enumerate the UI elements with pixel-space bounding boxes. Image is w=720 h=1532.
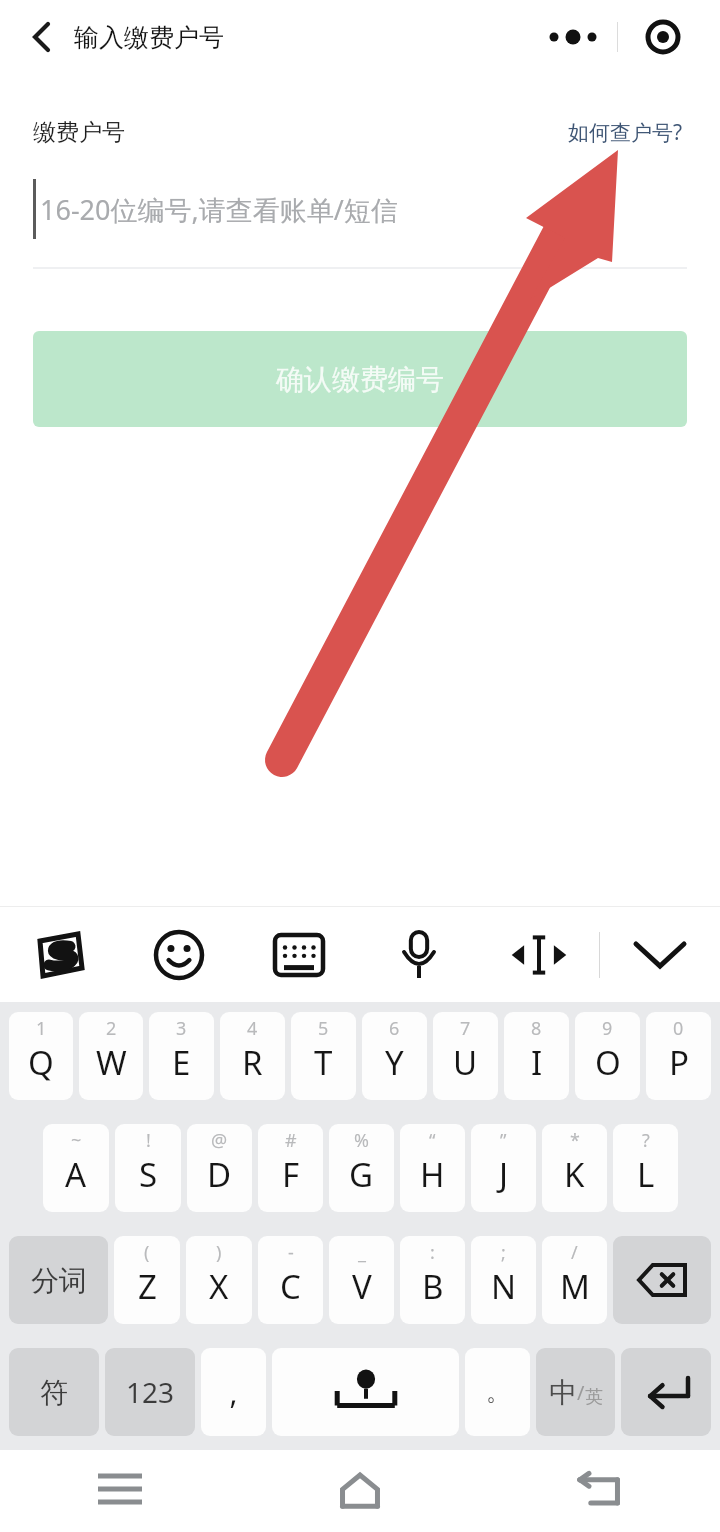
staticText: 英 <box>585 1386 603 1409</box>
staticText: U <box>453 1040 478 1085</box>
staticText: J <box>499 1152 509 1197</box>
button[interactable]: % <box>329 1124 394 1212</box>
staticText: 输入缴费户号 <box>74 22 224 53</box>
staticText: % <box>354 1128 369 1153</box>
staticText: V <box>352 1264 372 1309</box>
button[interactable]: Keyboard layout <box>239 907 359 1002</box>
staticText: ” <box>500 1128 507 1153</box>
staticText: I <box>531 1040 543 1085</box>
staticText: * <box>570 1128 580 1153</box>
button[interactable]: 0 <box>646 1012 711 1100</box>
button[interactable]: ~ <box>43 1124 109 1212</box>
staticText: ) <box>216 1240 222 1265</box>
staticText: 1 <box>36 1016 47 1041</box>
button[interactable]: Enter <box>621 1348 711 1436</box>
staticText: W <box>96 1040 127 1085</box>
button[interactable]: ) <box>186 1236 252 1324</box>
staticText: 符 <box>40 1375 68 1410</box>
staticText: E <box>172 1040 191 1085</box>
staticText: ? <box>642 1128 650 1153</box>
staticText: ! <box>146 1128 151 1153</box>
staticText: H <box>420 1152 445 1197</box>
staticText: 123 <box>126 1373 175 1411</box>
button[interactable]: Backspace <box>613 1236 711 1324</box>
button[interactable]: 1 <box>9 1012 73 1100</box>
button[interactable]: , <box>201 1348 266 1436</box>
button[interactable]: 5 <box>291 1012 356 1100</box>
button[interactable]: ! <box>115 1124 181 1212</box>
staticText: 0 <box>673 1016 684 1041</box>
button[interactable]: Move cursor <box>479 907 599 1002</box>
button[interactable]: Close <box>618 10 708 64</box>
button[interactable]: 6 <box>362 1012 427 1100</box>
button[interactable]: # <box>258 1124 323 1212</box>
staticText: D <box>207 1152 232 1197</box>
button[interactable]: Back <box>18 14 64 60</box>
button[interactable]: Home <box>240 1450 480 1532</box>
button[interactable]: Switch Chinese English <box>536 1348 615 1436</box>
button[interactable]: Recent apps <box>0 1450 240 1532</box>
button[interactable]: ( <box>114 1236 180 1324</box>
staticText: 7 <box>460 1016 471 1041</box>
staticText: 2 <box>106 1016 117 1041</box>
button[interactable]: ; <box>471 1236 536 1324</box>
staticText: 确认缴费编号 <box>276 362 444 397</box>
button[interactable]: Hide keyboard <box>600 907 720 1002</box>
button[interactable]: ” <box>471 1124 536 1212</box>
staticText: B <box>422 1264 444 1309</box>
staticText: C <box>280 1264 301 1309</box>
button[interactable]: 分词 <box>9 1236 108 1324</box>
staticText: / <box>577 1379 585 1406</box>
staticText: ( <box>144 1240 150 1265</box>
button[interactable]: 9 <box>575 1012 640 1100</box>
staticText: 中 <box>549 1375 577 1410</box>
staticText: T <box>314 1040 333 1085</box>
button[interactable]: Space, voice input <box>272 1348 459 1436</box>
staticText: S <box>139 1152 158 1197</box>
staticText: “ <box>429 1128 436 1153</box>
staticText: # <box>285 1128 297 1153</box>
staticText: - <box>288 1240 294 1265</box>
staticText: 如何查户号? <box>568 118 683 147</box>
staticText: Y <box>385 1040 404 1085</box>
staticText: A <box>65 1152 87 1197</box>
staticText: 5 <box>318 1016 329 1041</box>
staticText: F <box>282 1152 300 1197</box>
staticText: 4 <box>247 1016 258 1041</box>
button[interactable]: 8 <box>504 1012 569 1100</box>
button[interactable]: @ <box>187 1124 252 1212</box>
button[interactable]: / <box>542 1236 607 1324</box>
button[interactable]: 2 <box>79 1012 143 1100</box>
button[interactable]: Emoji <box>119 907 239 1002</box>
button[interactable]: More options <box>528 10 617 64</box>
button[interactable]: 4 <box>220 1012 285 1100</box>
button[interactable]: Voice input <box>359 907 479 1002</box>
staticText: G <box>349 1152 374 1197</box>
button[interactable]: Back <box>480 1450 720 1532</box>
button[interactable]: 确认缴费编号 <box>33 331 687 427</box>
staticText: 缴费户号 <box>33 118 125 147</box>
staticText: 3 <box>176 1016 187 1041</box>
staticText: Z <box>138 1264 157 1309</box>
staticText: 6 <box>389 1016 400 1041</box>
button[interactable]: “ <box>400 1124 465 1212</box>
button[interactable]: - <box>258 1236 323 1324</box>
button[interactable]: * <box>542 1124 607 1212</box>
button[interactable]: _ <box>329 1236 394 1324</box>
button[interactable]: 7 <box>433 1012 498 1100</box>
button[interactable]: 3 <box>149 1012 214 1100</box>
staticText: K <box>564 1152 585 1197</box>
button[interactable]: ? <box>613 1124 678 1212</box>
button[interactable]: 123 <box>105 1348 195 1436</box>
staticText: N <box>491 1264 517 1309</box>
button[interactable]: 如何查户号? <box>564 114 687 151</box>
staticText: / <box>571 1240 578 1265</box>
button[interactable]: 。 <box>465 1348 530 1436</box>
staticText: ; <box>501 1240 506 1265</box>
staticText: 分词 <box>31 1263 87 1298</box>
staticText: , <box>229 1372 238 1413</box>
button[interactable]: 符 <box>9 1348 99 1436</box>
button[interactable]: : <box>400 1236 465 1324</box>
button[interactable]: Sogou input <box>0 907 119 1002</box>
staticText: P <box>669 1040 689 1085</box>
